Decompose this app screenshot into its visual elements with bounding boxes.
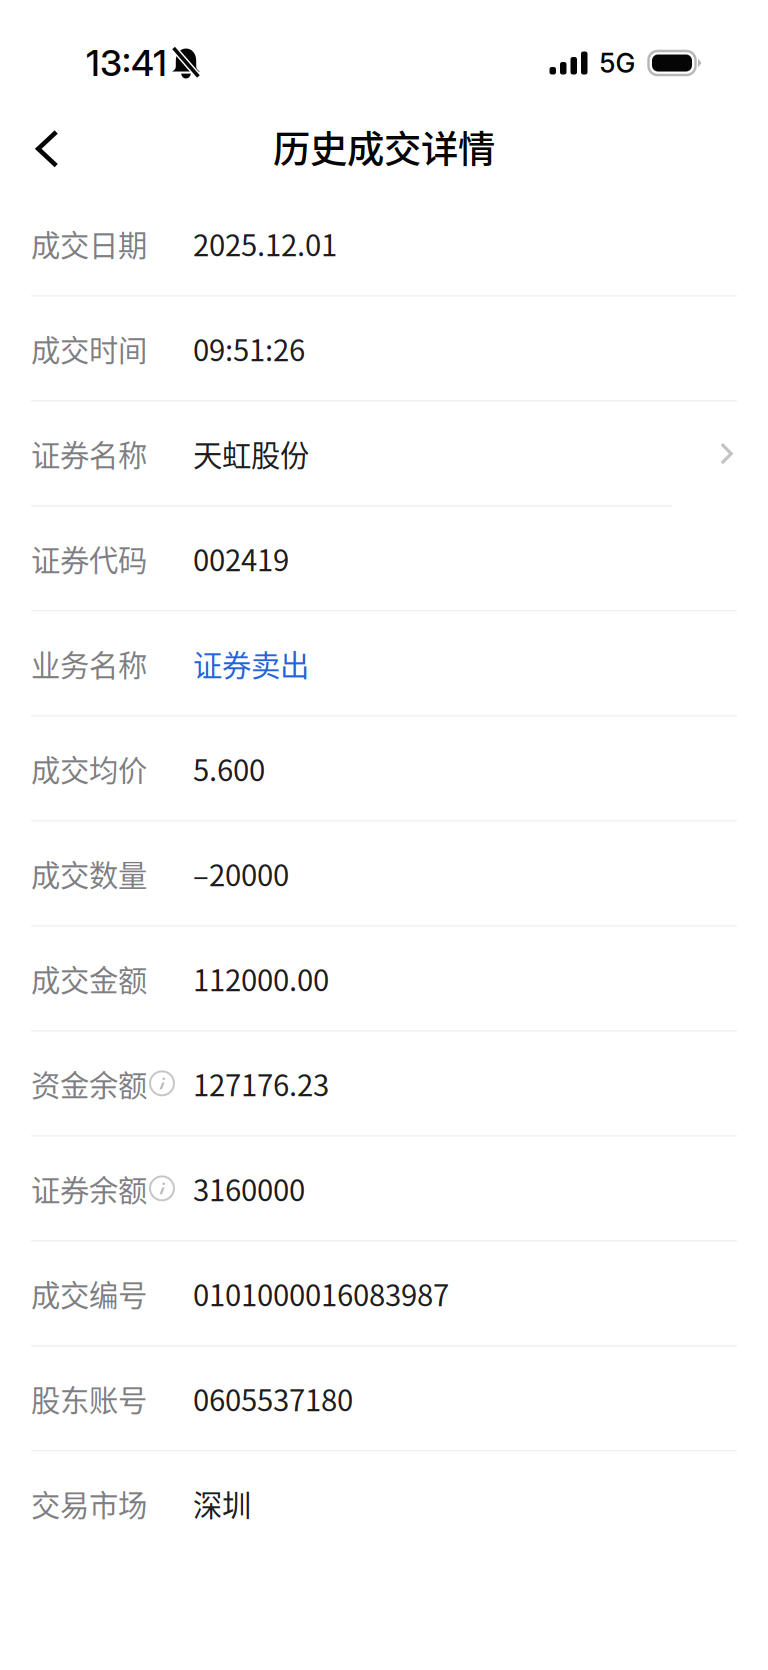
staticText: 成交日期	[31, 222, 147, 265]
staticText: 深圳	[193, 1482, 251, 1525]
button[interactable]: About 证券余额	[150, 1176, 174, 1200]
staticText: 历史成交详情	[273, 120, 495, 174]
button[interactable]: Back	[0, 103, 86, 191]
staticText: 2025.12.01	[193, 222, 337, 265]
staticText: 证券代码	[31, 537, 147, 580]
button[interactable]: 证券名称	[0, 402, 768, 505]
staticText: 5G	[599, 47, 635, 79]
staticText: 股东账号	[31, 1377, 147, 1420]
staticText: 13:41	[86, 41, 167, 85]
staticText: 成交数量	[31, 852, 147, 895]
staticText: 3160000	[193, 1167, 305, 1210]
staticText: 成交金额	[31, 957, 147, 1000]
staticText: 5.600	[193, 747, 265, 790]
staticText: 成交均价	[31, 747, 147, 790]
staticText: 09:51:26	[193, 327, 305, 370]
staticText: 0101000016083987	[193, 1272, 449, 1315]
staticText: 天虹股份	[193, 432, 309, 475]
staticText: 0605537180	[193, 1377, 353, 1420]
staticText: –20000	[193, 852, 289, 895]
staticText: 证券余额	[31, 1167, 147, 1210]
staticText: 资金余额	[31, 1062, 147, 1105]
button[interactable]: About 资金余额	[150, 1071, 174, 1095]
staticText: 112000.00	[193, 957, 329, 1000]
staticText: 成交时间	[31, 327, 147, 370]
staticText: 127176.23	[193, 1062, 329, 1105]
staticText: 证券名称	[31, 432, 147, 475]
staticText: 业务名称	[31, 642, 147, 685]
staticText: 交易市场	[31, 1482, 147, 1525]
staticText: 002419	[193, 537, 289, 580]
staticText: 成交编号	[31, 1272, 147, 1315]
button[interactable]: 证券卖出	[193, 642, 309, 685]
staticText: 证券卖出	[193, 642, 309, 685]
